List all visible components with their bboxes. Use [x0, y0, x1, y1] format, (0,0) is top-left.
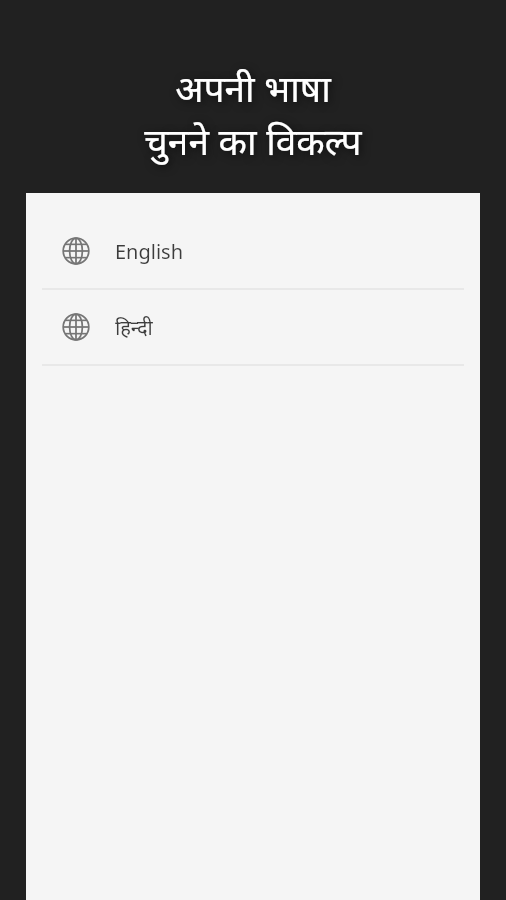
other: Language: [62, 237, 90, 265]
other: Language: [62, 313, 90, 341]
button[interactable]: Language: [26, 214, 480, 288]
button[interactable]: Language: [26, 290, 480, 364]
staticText: हिन्दी: [115, 314, 153, 341]
staticText: अपनी भाषा चुनने का विकल्प: [20, 62, 486, 165]
staticText: English: [115, 238, 184, 265]
